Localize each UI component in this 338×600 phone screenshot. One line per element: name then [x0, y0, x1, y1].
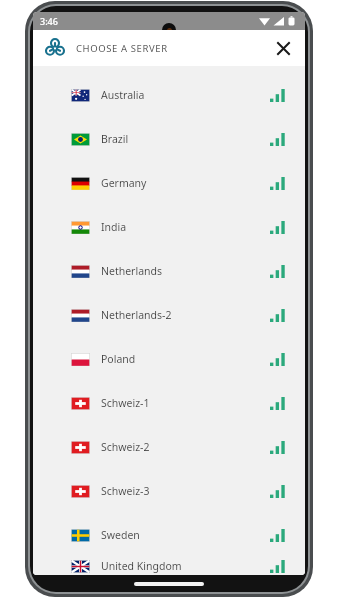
button[interactable]: Netherlands [33, 249, 305, 293]
staticText: United Kingdom [101, 559, 182, 573]
staticText: CHOOSE A SERVER [76, 42, 168, 55]
staticText: Sweden [101, 528, 140, 542]
staticText: 3:46 [40, 15, 58, 27]
staticText: Netherlands [101, 264, 163, 278]
button[interactable]: Germany [33, 161, 305, 205]
button[interactable]: United Kingdom [33, 557, 305, 575]
staticText: Brazil [101, 132, 129, 146]
staticText: Australia [101, 88, 145, 102]
button[interactable]: Close [269, 34, 297, 62]
staticText: Schweiz-1 [101, 396, 150, 410]
button[interactable]: Brazil [33, 117, 305, 161]
button[interactable]: Schweiz-2 [33, 425, 305, 469]
button[interactable]: Poland [33, 337, 305, 381]
button[interactable]: Schweiz-3 [33, 469, 305, 513]
staticText: Poland [101, 352, 136, 366]
button[interactable]: Netherlands-2 [33, 293, 305, 337]
staticText: Schweiz-3 [101, 484, 150, 498]
staticText: Schweiz-2 [101, 440, 150, 454]
button[interactable]: Schweiz-1 [33, 381, 305, 425]
button[interactable]: Sweden [33, 513, 305, 557]
staticText: Germany [101, 176, 147, 190]
button[interactable]: India [33, 205, 305, 249]
staticText: Netherlands-2 [101, 308, 172, 322]
staticText: India [101, 220, 127, 234]
button[interactable]: Australia [33, 73, 305, 117]
